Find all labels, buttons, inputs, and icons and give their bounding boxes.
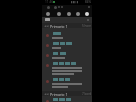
button[interactable]: Star (57, 12, 61, 16)
button[interactable]: Preview (46, 12, 50, 16)
staticText: ▮▮▮ ▮ (71, 0, 79, 4)
button[interactable] (42, 42, 92, 51)
button[interactable]: ◀◀ (42, 91, 92, 96)
button[interactable]: ◀◀ (42, 23, 92, 28)
button[interactable] (42, 98, 92, 102)
button[interactable]: Reply (67, 12, 71, 16)
button[interactable] (42, 78, 92, 90)
button[interactable]: Archive (76, 12, 80, 16)
button[interactable]: Call (54, 6, 57, 9)
staticText: Primario 1 (50, 24, 68, 29)
button[interactable] (42, 52, 92, 61)
button[interactable]: Delete (85, 12, 89, 16)
button[interactable] (42, 32, 92, 41)
staticText: 7 bord (82, 92, 92, 96)
button[interactable] (45, 18, 50, 21)
staticText: 5 hore (82, 24, 92, 28)
staticText: ◀◀ (44, 24, 49, 27)
button[interactable] (42, 62, 92, 77)
staticText: 11:46 (45, 0, 54, 4)
staticText: 84% (85, 0, 91, 4)
staticText: ◀◀ (44, 92, 49, 95)
staticText: Primario 1 (50, 92, 68, 97)
button[interactable]: Back (47, 6, 50, 9)
